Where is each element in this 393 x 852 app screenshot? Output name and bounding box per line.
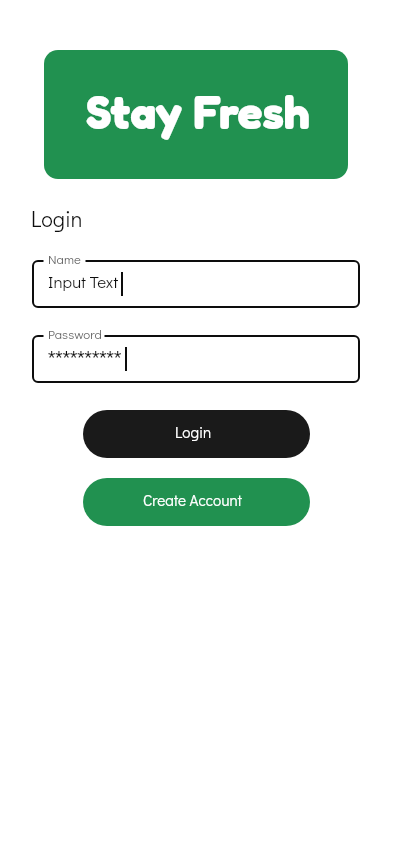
button[interactable]: Login (83, 410, 310, 458)
button[interactable]: Create Account (83, 478, 310, 526)
staticText: Name (48, 250, 81, 267)
staticText: Login (175, 422, 212, 442)
staticText: Login (31, 204, 83, 232)
staticText: Password (48, 325, 102, 342)
staticText: Stay Fresh (86, 84, 311, 140)
staticText: Input Text (48, 270, 119, 292)
button[interactable]: Password (33, 336, 359, 382)
button[interactable]: Stay Fresh (44, 50, 348, 179)
staticText: ********** (48, 347, 122, 367)
button[interactable]: Name (33, 261, 359, 307)
staticText: Create Account (143, 490, 242, 510)
